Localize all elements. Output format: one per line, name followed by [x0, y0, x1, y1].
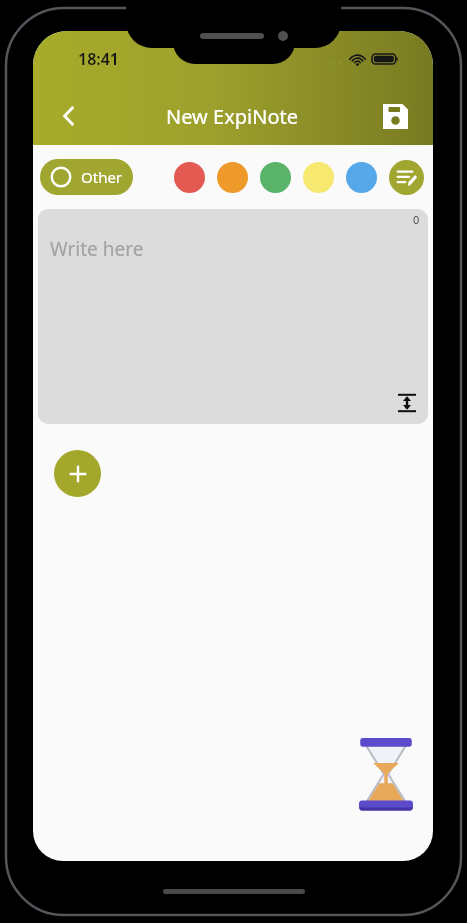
button[interactable]: Colour — [303, 162, 334, 193]
button[interactable]: Colour — [174, 162, 205, 193]
button[interactable]: Edit note — [389, 160, 424, 195]
staticText: 0 — [413, 212, 420, 227]
staticText: 18:41 — [78, 48, 120, 70]
staticText: Write here — [50, 236, 144, 262]
button[interactable]: Back — [47, 94, 91, 138]
button[interactable]: Write here — [38, 209, 428, 424]
staticText: New ExpiNote — [91, 103, 373, 130]
button[interactable]: Colour — [260, 162, 291, 193]
button[interactable]: Other — [40, 159, 133, 195]
button[interactable]: Colour — [217, 162, 248, 193]
button[interactable]: Resize — [392, 388, 422, 418]
button[interactable]: Colour — [346, 162, 377, 193]
button[interactable]: Save — [373, 94, 417, 138]
staticText: Other — [81, 167, 123, 187]
button[interactable]: Add — [54, 450, 101, 497]
